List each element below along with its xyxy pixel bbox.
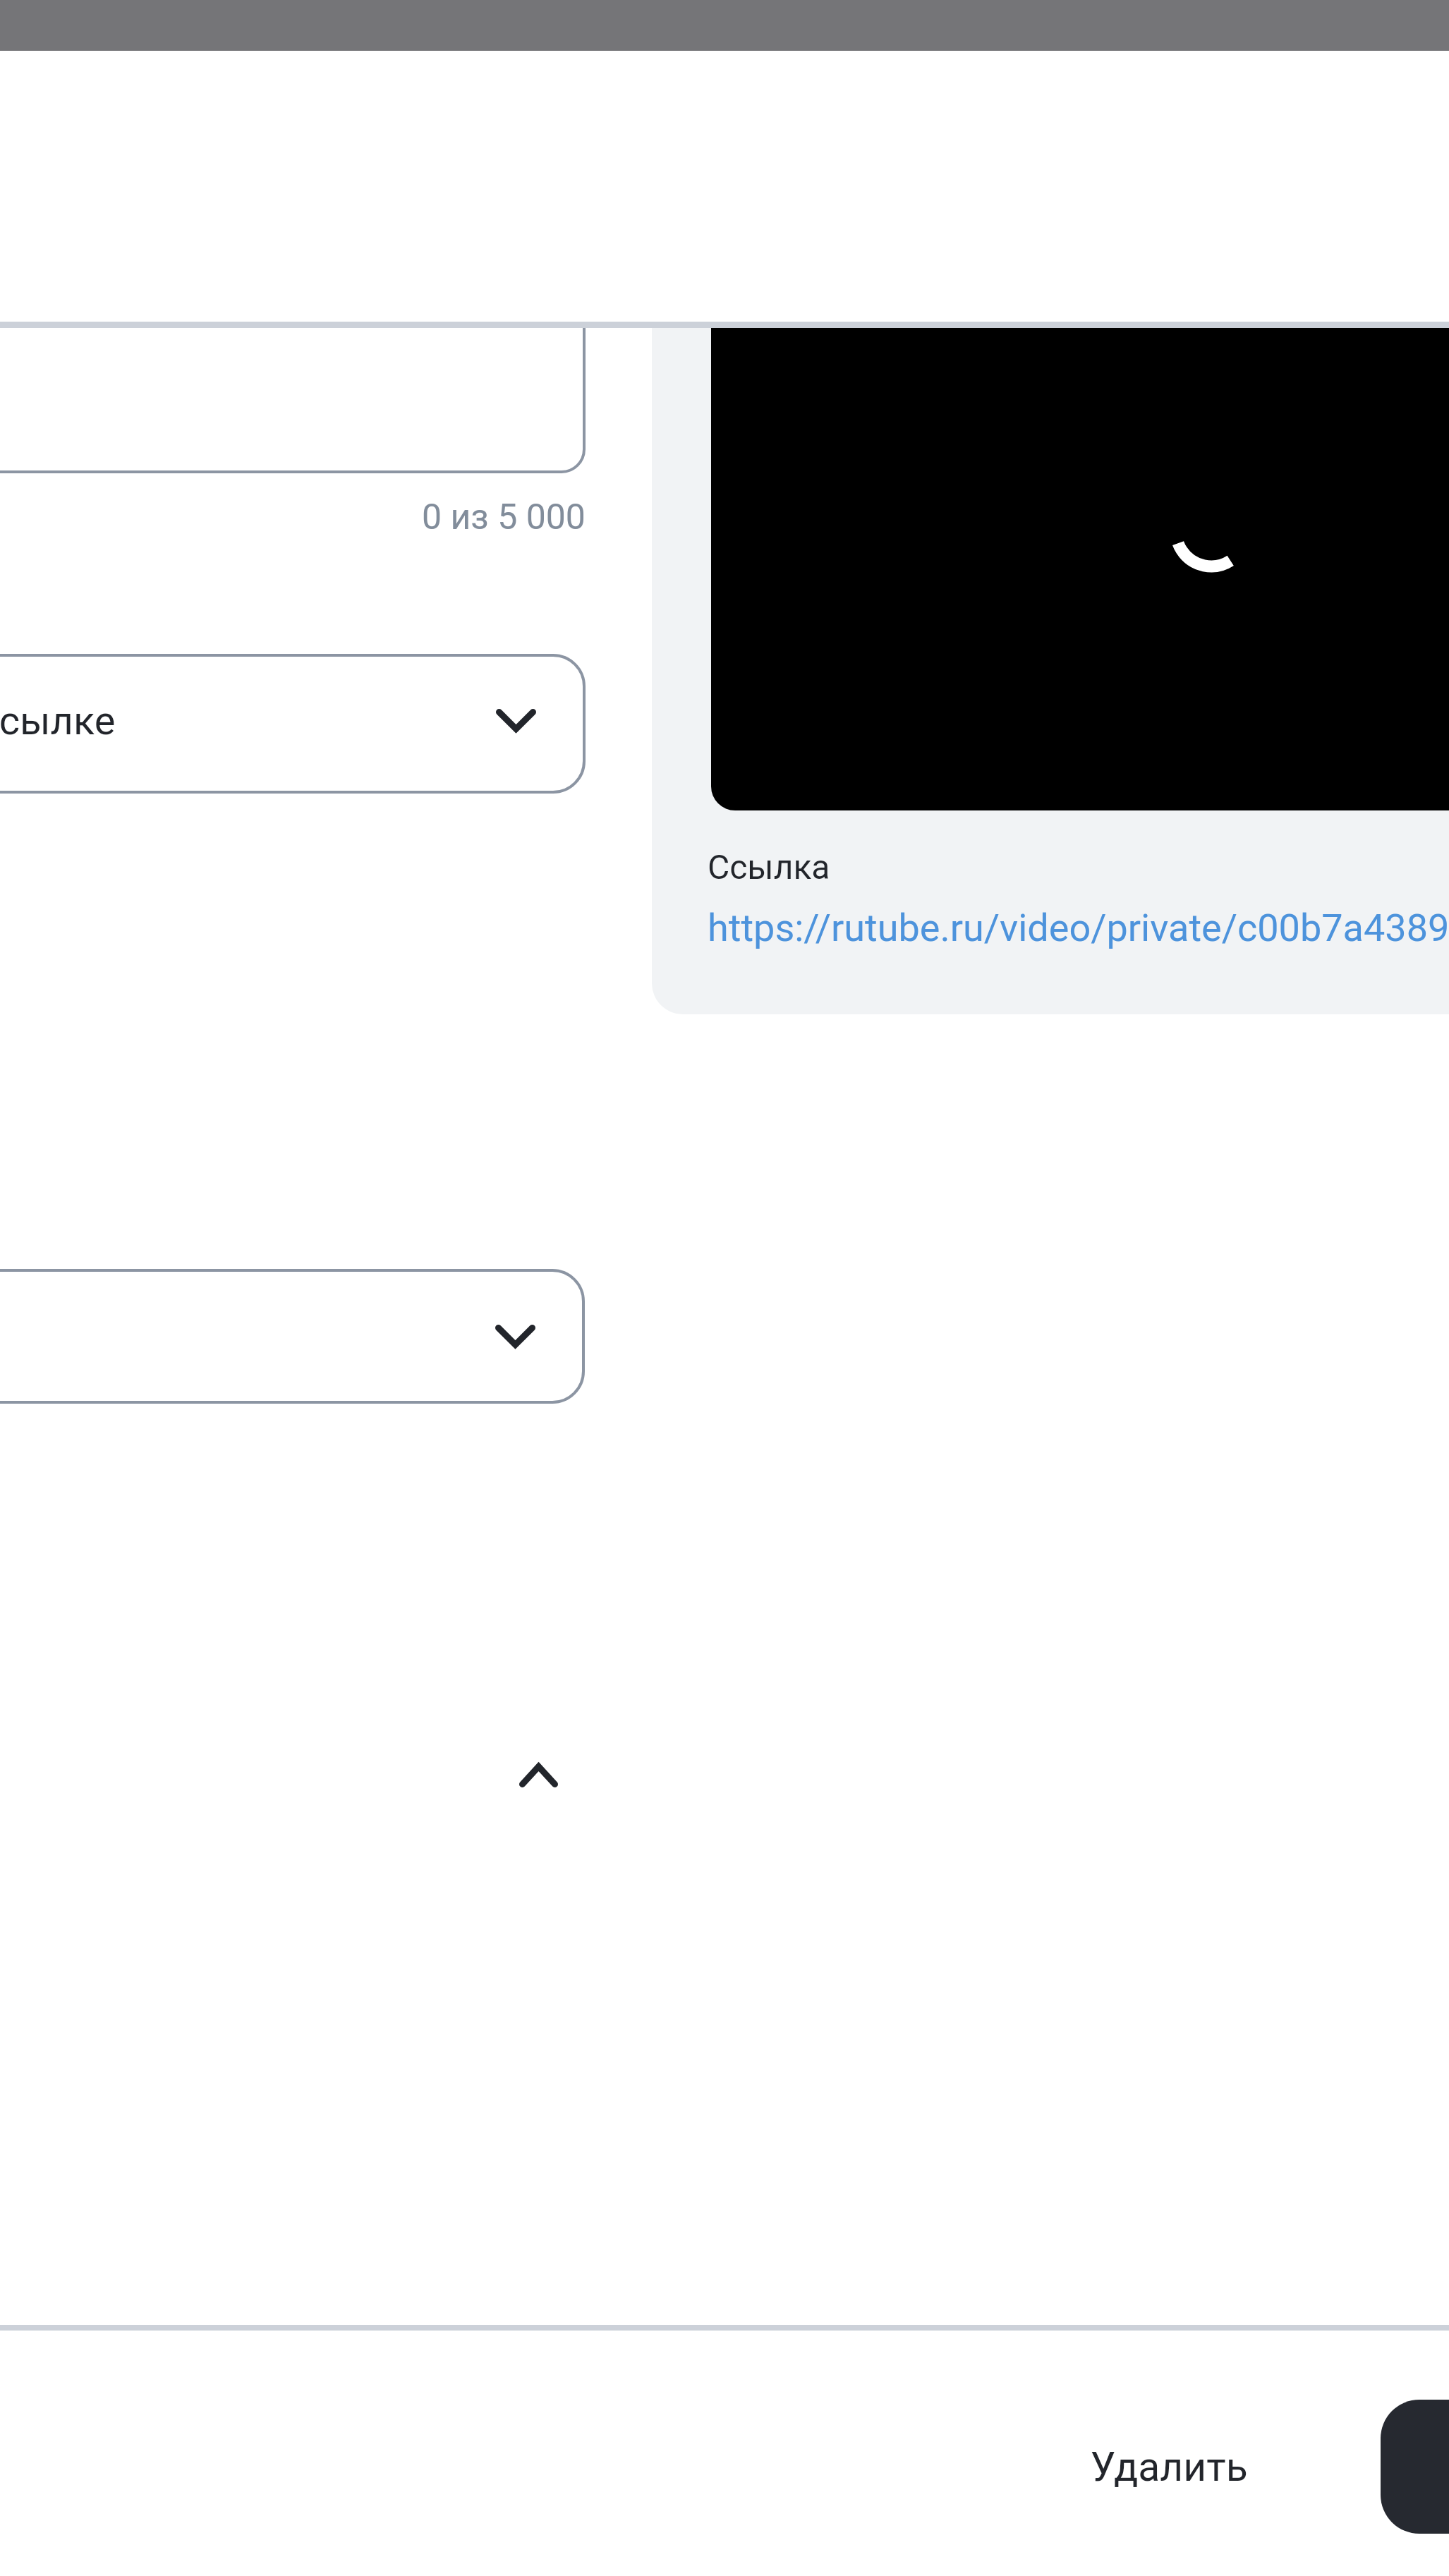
button[interactable]: Удалить (1043, 2415, 1295, 2518)
button[interactable]: Сохранить (1381, 2400, 1449, 2534)
staticText: https://rutube.ru/video/private/c00b7a43… (708, 906, 1449, 950)
button[interactable]: Доступ по ссылке (0, 654, 586, 794)
staticText: Удалить (1090, 2443, 1248, 2491)
button[interactable]: Свернуть (494, 1731, 583, 1820)
button[interactable] (0, 1269, 585, 1404)
staticText: Доступ по ссылке (0, 698, 116, 744)
staticText: Ссылка (708, 847, 830, 887)
staticText: 0 из 5 000 (422, 497, 586, 538)
